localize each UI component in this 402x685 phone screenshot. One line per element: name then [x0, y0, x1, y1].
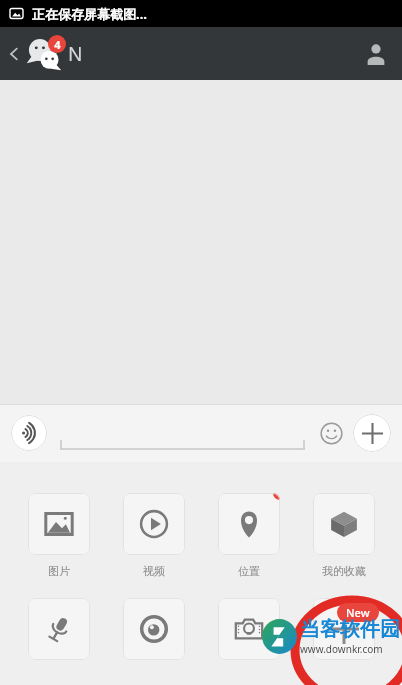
staticText: 视频 [143, 564, 165, 578]
staticText: New [346, 605, 370, 620]
button[interactable] [313, 493, 375, 555]
button[interactable] [60, 415, 305, 451]
button[interactable]: Emoji [314, 416, 348, 450]
staticText: 正在保存屏幕截图... [32, 5, 147, 23]
button[interactable]: camera [218, 598, 280, 660]
button[interactable]: 4 [26, 36, 83, 72]
button[interactable] [218, 493, 280, 555]
staticText: www.downkr.com [300, 642, 383, 656]
button[interactable]: plus [313, 598, 375, 660]
button[interactable] [123, 493, 185, 555]
button[interactable]: eye [123, 598, 185, 660]
button[interactable]: mic [28, 598, 90, 660]
button[interactable]: Voice message [11, 415, 47, 451]
button[interactable]: Back [0, 27, 28, 80]
staticText: N [68, 41, 83, 67]
staticText: 图片 [48, 564, 70, 578]
staticText: 位置 [238, 564, 260, 578]
button[interactable]: More options [353, 414, 391, 452]
staticText: 当客软件园 [300, 617, 400, 642]
staticText: 4 [54, 37, 61, 52]
button[interactable]: Profile [350, 27, 402, 80]
button[interactable] [28, 493, 90, 555]
staticText: 我的收藏 [322, 564, 366, 578]
